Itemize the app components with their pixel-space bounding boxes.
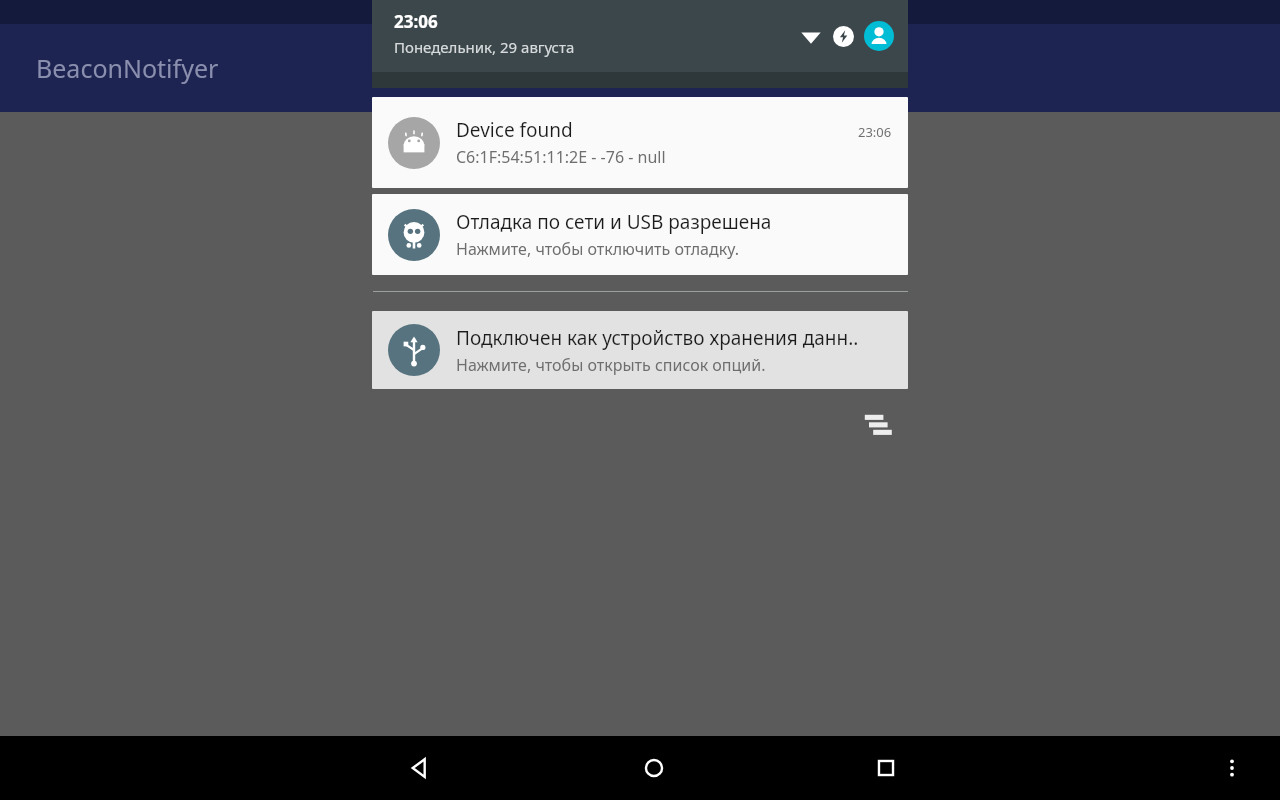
button[interactable]: Подключен как устройство хранения данн.. bbox=[372, 311, 908, 389]
staticText: Понедельник, 29 августа bbox=[394, 37, 575, 57]
button[interactable]: Home bbox=[624, 738, 684, 798]
staticText: Нажмите, чтобы отключить отладку. bbox=[456, 238, 740, 260]
other: Charging bbox=[833, 26, 854, 47]
button[interactable]: Отладка по сети и USB разрешена bbox=[372, 194, 908, 275]
staticText: 23:06 bbox=[394, 10, 438, 33]
button[interactable]: Clear all notifications bbox=[856, 403, 900, 447]
staticText: Отладка по сети и USB разрешена bbox=[456, 209, 772, 235]
staticText: 23:06 bbox=[858, 123, 892, 141]
staticText: Please activate bluetooth to start scann… bbox=[470, 150, 810, 173]
button[interactable]: More options bbox=[1210, 746, 1254, 790]
button[interactable]: Back bbox=[390, 738, 450, 798]
staticText: Подключен как устройство хранения данн.. bbox=[456, 325, 859, 351]
button[interactable]: Device found bbox=[372, 97, 908, 188]
button[interactable]: User profile bbox=[864, 21, 894, 51]
staticText: Нажмите, чтобы открыть список опций. bbox=[456, 354, 766, 376]
button[interactable]: Recents bbox=[856, 738, 916, 798]
staticText: BeaconNotifyer bbox=[36, 51, 219, 85]
staticText: C6:1F:54:51:11:2E - -76 - null bbox=[456, 146, 666, 168]
staticText: Device found bbox=[456, 117, 573, 143]
other: Wi-Fi bbox=[800, 25, 822, 47]
